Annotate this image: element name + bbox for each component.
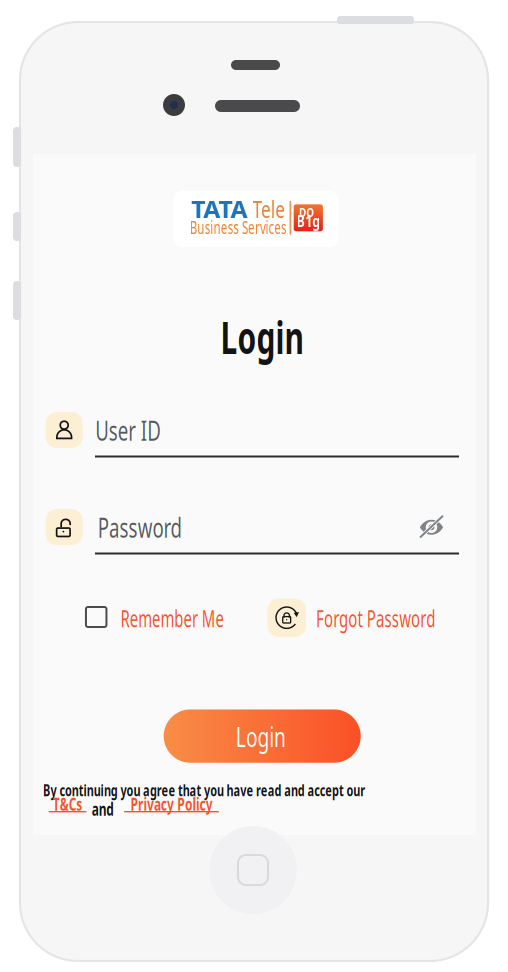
staticText: Login [201,308,324,366]
button[interactable]: Forgot Password [267,598,434,637]
staticText: TATA [194,194,246,224]
button[interactable]: T&Cs [49,793,87,817]
staticText: Tele [247,194,290,224]
staticText: Remember Me [93,603,251,633]
staticText: B1g [293,210,323,231]
staticText: Business Services [160,214,316,239]
staticText: DO [297,204,315,220]
staticText: Privacy Policy [112,792,231,815]
button[interactable]: Remember Me [82,600,233,634]
button[interactable]: Login [164,709,361,763]
staticText: and [87,797,119,820]
staticText: Password [80,510,200,545]
staticText: T&Cs [46,792,89,815]
button[interactable]: User ID [33,400,476,460]
button[interactable]: Privacy Policy [124,793,219,817]
button[interactable]: Show password [412,509,450,543]
staticText: Forgot Password [285,603,466,633]
staticText: User ID [81,413,174,448]
staticText: Login [224,717,297,755]
staticText: By continuing you agree that you have re… [0,779,439,801]
